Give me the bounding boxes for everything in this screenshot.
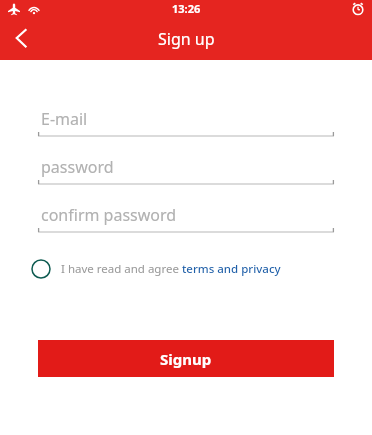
staticText: E-mail [41, 108, 88, 130]
button[interactable]: confirm password [38, 204, 334, 234]
button[interactable]: Back [0, 16, 44, 60]
staticText: Signup [160, 349, 212, 369]
staticText: password [41, 156, 114, 178]
staticText: I have read and agree terms and privacy [61, 261, 281, 277]
button[interactable]: E-mail [38, 108, 334, 138]
button[interactable]: Signup [38, 340, 334, 377]
button[interactable]: password [38, 156, 334, 186]
staticText: Sign up [158, 28, 215, 50]
staticText: 13:26 [172, 1, 201, 16]
staticText: confirm password [41, 204, 177, 226]
button[interactable]: I have read and agree terms and privacy [30, 255, 352, 283]
